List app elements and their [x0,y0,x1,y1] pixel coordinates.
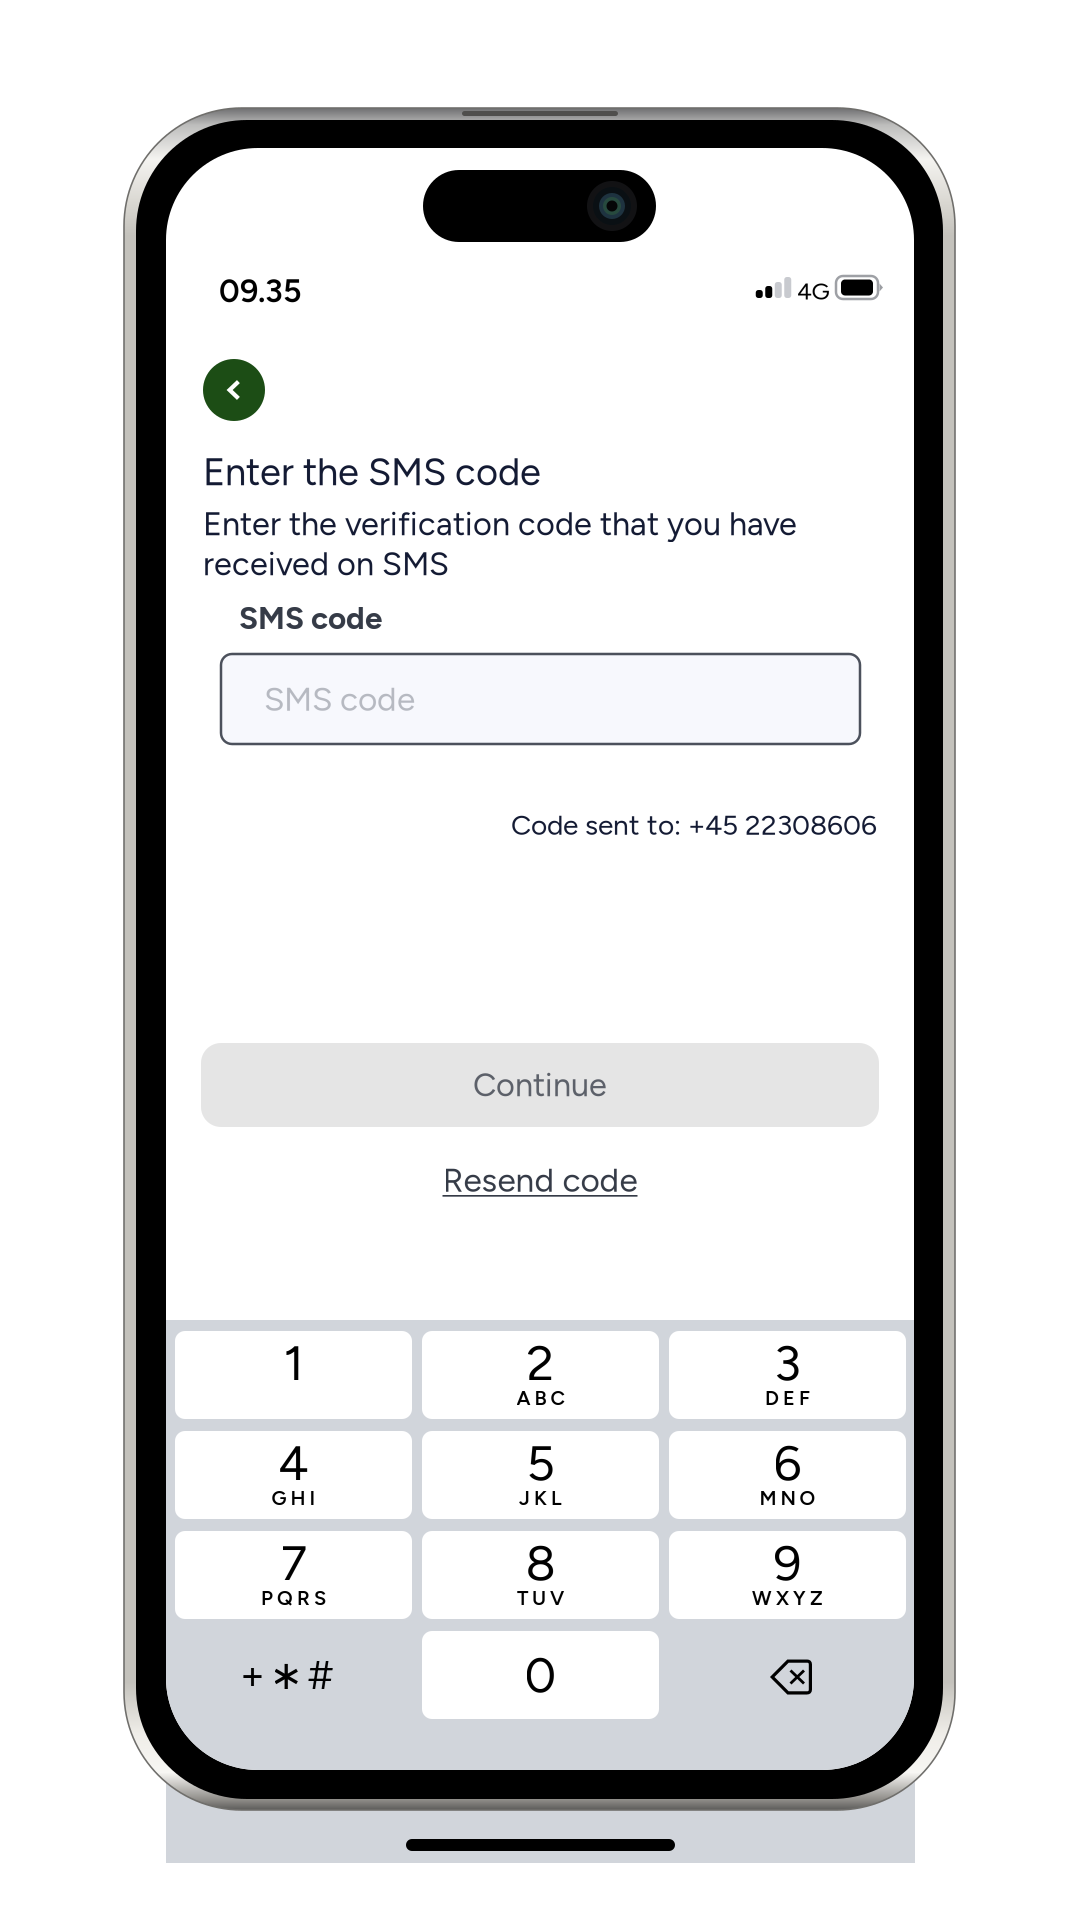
button[interactable]: 1 [175,1331,412,1419]
staticText: received on SMS [203,545,449,583]
button[interactable]: 9 [669,1531,906,1619]
staticText: Code sent to: +45 22308606 [511,808,877,842]
staticText: Enter the verification code that you hav… [203,505,797,543]
staticText: 1 [283,1333,303,1393]
staticText: DEF [765,1386,810,1410]
button[interactable]: 5 [422,1431,659,1519]
button[interactable]: 4 [175,1431,412,1519]
staticText: ABC [516,1386,564,1410]
staticText: 4G [797,277,829,305]
staticText: 4 [278,1433,309,1493]
button[interactable]: Continue [201,1043,879,1127]
staticText: 09.35 [219,272,301,310]
staticText: Resend code [442,1160,637,1200]
staticText: GHI [271,1486,315,1510]
button[interactable]: 8 [422,1531,659,1619]
staticText: 2 [526,1333,554,1393]
staticText: SMS code [264,679,415,719]
button[interactable]: 2 [422,1331,659,1419]
staticText: 0 [524,1645,556,1705]
staticText: +∗# [240,1651,333,1699]
button[interactable]: 7 [175,1531,412,1619]
staticText: TUV [517,1586,564,1610]
button[interactable]: 3 [669,1331,906,1419]
button[interactable]: Resend code [390,1156,690,1204]
staticText: 7 [280,1533,306,1593]
button[interactable]: Delete [665,1629,910,1721]
staticText: 9 [773,1533,801,1593]
staticText: 6 [773,1433,801,1493]
staticText: Continue [473,1066,607,1104]
button[interactable]: Back [203,359,265,421]
button[interactable]: 0 [422,1631,659,1719]
staticText: 3 [774,1333,801,1393]
staticText: JKL [519,1486,562,1510]
staticText: 5 [526,1433,554,1493]
staticText: 8 [525,1533,555,1593]
staticText: PQRS [261,1586,326,1610]
button[interactable]: Symbols [175,1631,412,1719]
staticText: Enter the SMS code [203,449,541,495]
staticText: SMS code [239,599,382,637]
staticText: WXYZ [752,1586,823,1610]
staticText: MNO [759,1486,815,1510]
button[interactable]: 6 [669,1431,906,1519]
